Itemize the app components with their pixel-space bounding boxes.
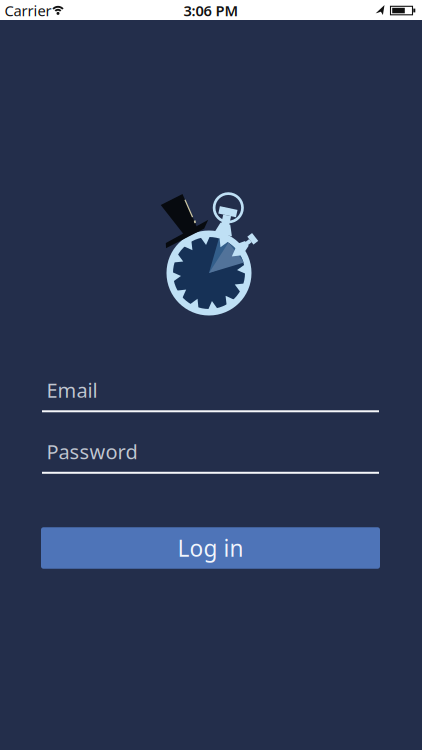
staticText: 3:06 PM [183, 1, 238, 20]
button[interactable]: Log in [41, 527, 380, 569]
staticText: Log in [177, 533, 243, 563]
button[interactable]: Password [42, 438, 379, 474]
staticText: Password [46, 438, 137, 465]
staticText: Carrier [4, 1, 51, 20]
button[interactable]: Email [42, 377, 379, 412]
staticText: Email [46, 377, 97, 403]
